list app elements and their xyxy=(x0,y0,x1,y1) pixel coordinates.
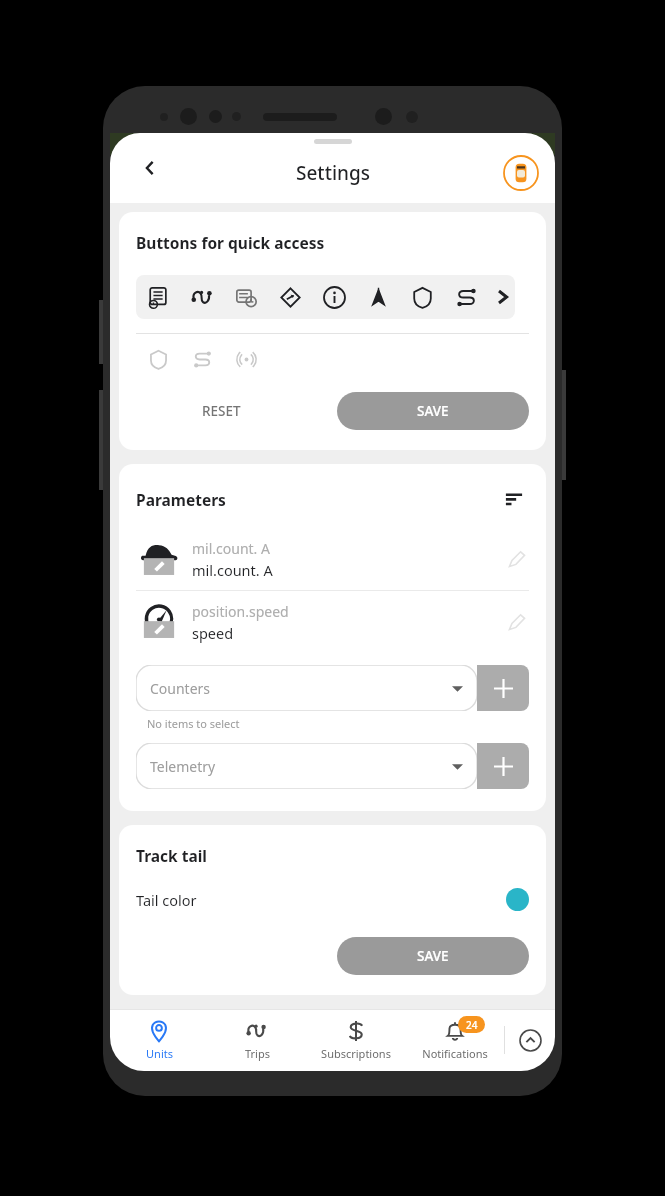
button[interactable]: Edit xyxy=(500,605,534,639)
button[interactable]: Sort xyxy=(499,484,529,514)
staticText: Buttons for quick access xyxy=(136,232,325,253)
button[interactable]: Hidden action xyxy=(224,340,268,378)
button[interactable]: Quick action xyxy=(268,275,312,319)
staticText: speed xyxy=(192,623,234,643)
button[interactable]: Quick action xyxy=(444,275,488,319)
button[interactable]: mil.count. A xyxy=(119,528,546,590)
staticText: RESET xyxy=(202,402,241,420)
staticText: Subscriptions xyxy=(321,1046,391,1061)
staticText: Parameters xyxy=(136,489,226,510)
staticText: Tail color xyxy=(136,890,197,910)
staticText: Pustilta xyxy=(313,135,352,150)
button[interactable]: SAVE xyxy=(337,937,529,975)
staticText: Settings xyxy=(296,160,370,186)
button[interactable]: Edit xyxy=(500,542,534,576)
staticText: Telemetry xyxy=(150,757,216,776)
staticText: No items to select xyxy=(147,716,240,731)
staticText: SAVE xyxy=(417,947,449,965)
button[interactable]: Subscriptions xyxy=(306,1009,405,1071)
staticText: mil.count. A xyxy=(192,539,270,558)
button[interactable]: Quick action xyxy=(136,275,180,319)
button[interactable]: Back xyxy=(130,148,170,188)
staticText: position.speed xyxy=(192,602,289,621)
button[interactable]: Notifications xyxy=(405,1009,504,1071)
button[interactable]: Tail color xyxy=(119,888,546,911)
staticText: Counters xyxy=(150,679,211,698)
button[interactable]: Telemetry xyxy=(136,743,477,789)
button[interactable]: Quick action xyxy=(312,275,356,319)
staticText: Units xyxy=(146,1046,173,1061)
button[interactable]: Trips xyxy=(208,1009,306,1071)
button[interactable]: Hidden action xyxy=(180,340,224,378)
button[interactable]: Add xyxy=(477,665,529,711)
staticText: Trips xyxy=(245,1046,270,1061)
staticText: Track tail xyxy=(136,845,207,866)
button[interactable]: Quick action xyxy=(356,275,400,319)
staticText: Notifications xyxy=(422,1046,488,1061)
button[interactable]: Add xyxy=(477,743,529,789)
button[interactable]: Counters xyxy=(136,665,477,711)
button[interactable]: More xyxy=(488,275,518,319)
button[interactable]: Quick action xyxy=(180,275,224,319)
button[interactable]: position.speed xyxy=(119,591,546,653)
button[interactable]: SAVE xyxy=(337,392,529,430)
staticText: mil.count. A xyxy=(192,560,273,580)
staticText: 24 xyxy=(466,1018,478,1032)
button[interactable]: RESET xyxy=(186,393,257,429)
staticText: SAVE xyxy=(417,402,449,420)
button[interactable]: Vehicle xyxy=(503,155,539,191)
button[interactable]: Expand xyxy=(505,1009,555,1071)
button[interactable]: Quick action xyxy=(400,275,444,319)
button[interactable]: Quick action xyxy=(224,275,268,319)
button[interactable]: Hidden action xyxy=(136,340,180,378)
button[interactable]: Units xyxy=(110,1009,208,1071)
